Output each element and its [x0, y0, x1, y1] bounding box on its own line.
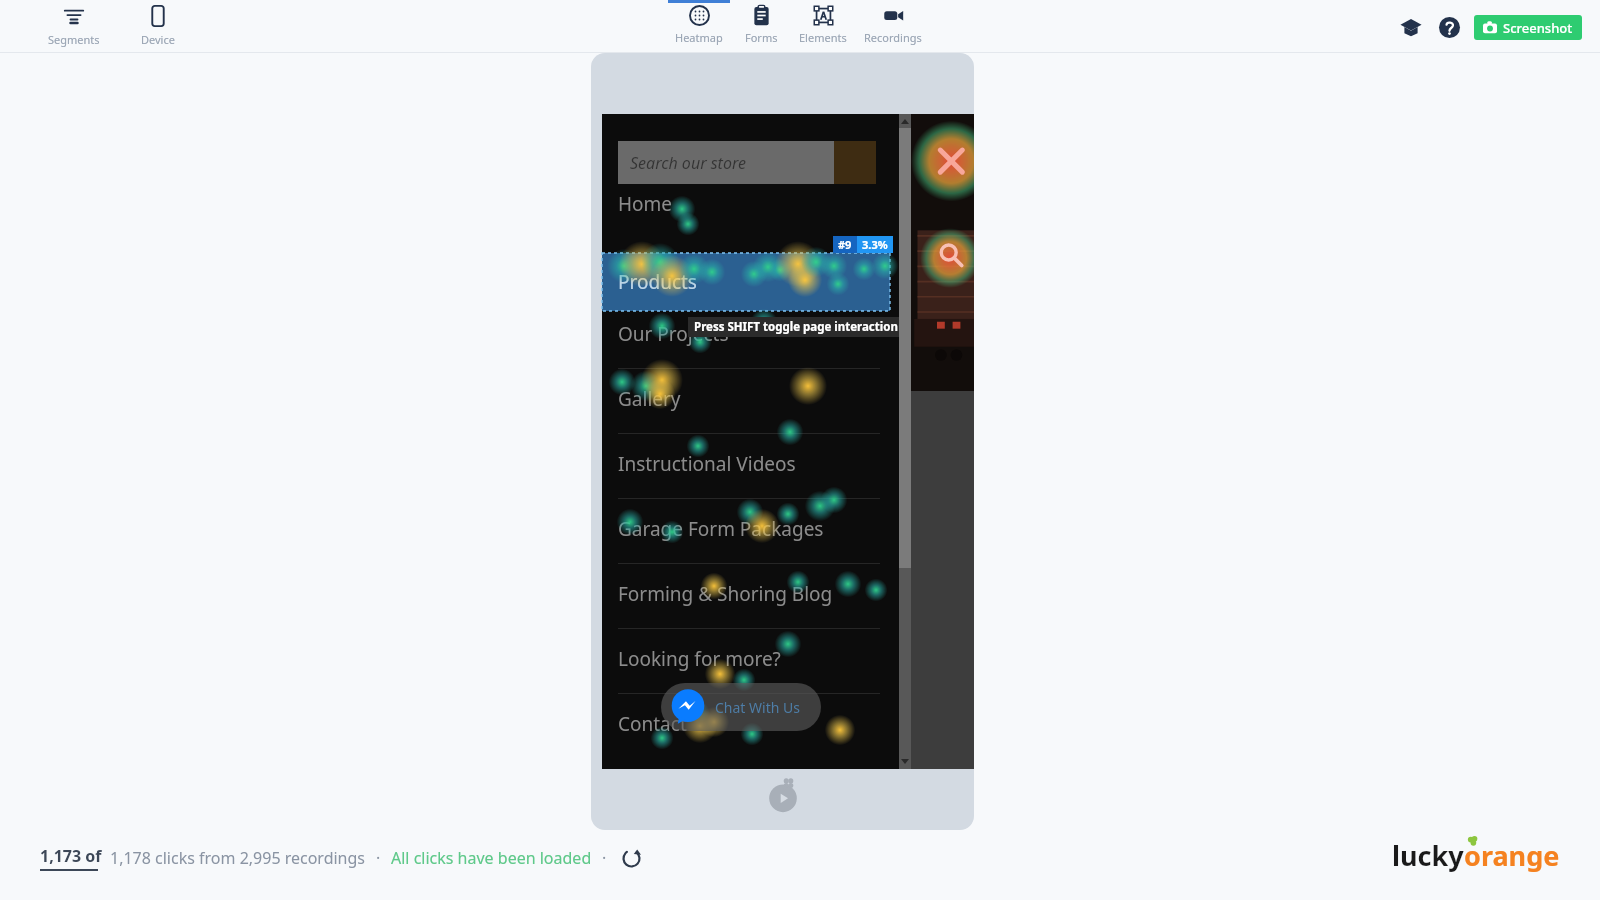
- staticText: Press SHIFT toggle page interaction: [694, 319, 898, 335]
- staticText: orange: [1464, 837, 1560, 874]
- button[interactable]: Gallery: [602, 369, 899, 429]
- staticText: Heatmap: [675, 30, 723, 45]
- staticText: Elements: [799, 30, 847, 45]
- staticText: #9: [838, 237, 852, 252]
- button[interactable]: Help: [1432, 10, 1466, 44]
- button[interactable]: Screenshot: [1474, 15, 1582, 40]
- staticText: 3.3%: [862, 237, 888, 252]
- button[interactable]: Elements: [792, 0, 854, 45]
- button[interactable]: Recordings: [854, 0, 932, 45]
- button[interactable]: Forming & Shoring Blog: [602, 564, 899, 624]
- button[interactable]: Home: [602, 174, 899, 234]
- staticText: Forms: [745, 30, 778, 45]
- staticText: 1,173 of: [40, 845, 102, 867]
- staticText: 1,178 clicks from 2,995 recordings: [110, 847, 366, 869]
- staticText: ·: [602, 847, 607, 869]
- button[interactable]: Chat With Us: [661, 683, 821, 731]
- button[interactable]: Segments: [46, 2, 102, 50]
- staticText: Chat With Us: [715, 698, 800, 717]
- staticText: lucky: [1392, 837, 1464, 874]
- staticText: Screenshot: [1503, 19, 1573, 37]
- button[interactable]: Our Projects: [602, 304, 899, 364]
- button[interactable]: Device: [130, 2, 186, 50]
- button[interactable]: Products: [602, 253, 890, 311]
- staticText: Recordings: [864, 30, 922, 45]
- staticText: Home: [618, 191, 673, 217]
- staticText: Forming & Shoring Blog: [618, 581, 833, 607]
- button[interactable]: Refresh: [617, 844, 645, 872]
- staticText: Gallery: [618, 386, 681, 412]
- staticText: Contact: [618, 711, 687, 737]
- button[interactable]: Contact: [602, 694, 899, 754]
- staticText: Instructional Videos: [618, 451, 796, 477]
- staticText: Garage Form Packages: [618, 516, 824, 542]
- button[interactable]: Forms: [730, 0, 792, 45]
- button[interactable]: Instructional Videos: [602, 434, 899, 494]
- button[interactable]: Heatmap: [668, 0, 730, 45]
- button[interactable]: Learning: [1394, 10, 1428, 44]
- button[interactable]: Search our store: [618, 141, 876, 184]
- staticText: Segments: [48, 32, 100, 47]
- button[interactable]: Garage Form Packages: [602, 499, 899, 559]
- staticText: Looking for more?: [618, 646, 781, 672]
- staticText: Search our store: [630, 152, 746, 174]
- staticText: All clicks have been loaded: [391, 847, 592, 869]
- staticText: ·: [376, 847, 381, 869]
- button[interactable]: Play recording: [760, 768, 806, 814]
- staticText: Products: [618, 269, 697, 295]
- staticText: Device: [141, 32, 175, 47]
- staticText: Our Projects: [618, 321, 729, 347]
- button[interactable]: Looking for more?: [602, 629, 899, 689]
